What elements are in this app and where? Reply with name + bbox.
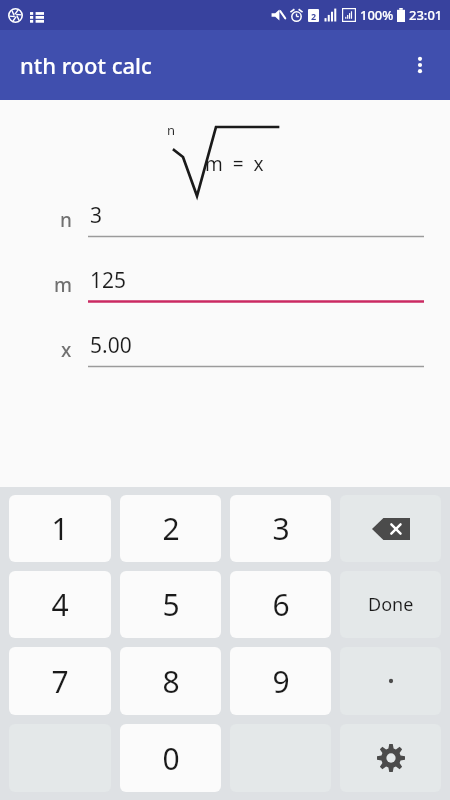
staticText: 9 [272, 661, 290, 702]
staticText: 125 [90, 266, 127, 295]
button[interactable]: 1 [9, 495, 111, 562]
button[interactable]: 0 [120, 724, 221, 792]
staticText: 7 [51, 661, 69, 702]
button[interactable]: 3 [230, 495, 331, 562]
staticText: n [167, 121, 176, 139]
staticText: m [54, 272, 72, 298]
button[interactable]: Settings [340, 724, 441, 792]
staticText: x [61, 337, 72, 363]
button[interactable]: 9 [230, 647, 331, 715]
staticText: 0 [162, 738, 180, 779]
staticText: 1 [51, 508, 69, 549]
staticText: 100% [360, 6, 394, 24]
staticText: 3 [272, 508, 290, 549]
staticText: n [60, 207, 72, 233]
button[interactable]: Backspace [340, 495, 441, 562]
button[interactable]: 4 [9, 571, 111, 638]
button[interactable]: 2 [120, 495, 221, 562]
button[interactable]: 5 [120, 571, 221, 638]
staticText: 2 [162, 508, 180, 549]
button[interactable]: Done [340, 571, 441, 638]
button[interactable]: More options [398, 43, 442, 87]
button[interactable]: m [0, 266, 450, 303]
staticText: 6 [272, 584, 290, 625]
button[interactable]: 7 [9, 647, 111, 715]
button[interactable]: Decimal point [340, 647, 441, 715]
staticText: 8 [162, 661, 180, 702]
staticText: 5.00 [90, 331, 132, 360]
staticText: 5 [162, 584, 180, 625]
staticText: m = x [205, 151, 264, 177]
button[interactable]: 6 [230, 571, 331, 638]
button[interactable]: x [0, 331, 450, 368]
staticText: 23:01 [409, 6, 443, 24]
staticText: 2 [311, 10, 317, 22]
staticText: 4 [51, 584, 69, 625]
staticText: 3 [90, 201, 103, 230]
button[interactable]: n [0, 201, 450, 238]
staticText: nth root calc [20, 50, 152, 80]
staticText: Done [368, 592, 414, 617]
button[interactable]: 8 [120, 647, 221, 715]
